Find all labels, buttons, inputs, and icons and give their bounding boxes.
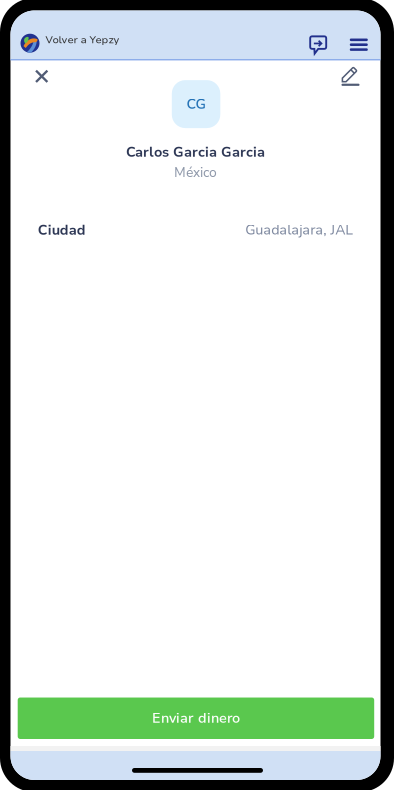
staticText: CG <box>187 95 206 114</box>
button[interactable]: Enviar dinero <box>18 697 374 739</box>
button[interactable]: Editar <box>333 58 367 92</box>
button[interactable]: Menú <box>342 28 376 62</box>
staticText: Enviar dinero <box>152 709 240 728</box>
staticText: Guadalajara, JAL <box>245 221 353 239</box>
button[interactable]: Compartir <box>301 28 335 62</box>
staticText: Carlos Garcia Garcia <box>126 142 265 162</box>
staticText: Ciudad <box>38 220 86 240</box>
button[interactable]: Cerrar <box>25 59 59 93</box>
staticText: Volver a Yepzy <box>45 32 119 47</box>
staticText: México <box>174 163 217 182</box>
